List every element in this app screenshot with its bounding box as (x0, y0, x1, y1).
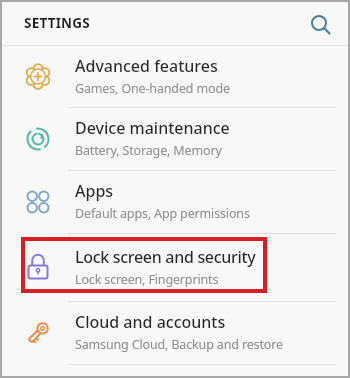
button[interactable]: Lock screen and security (0, 234, 350, 301)
staticText: Cloud and accounts (75, 311, 226, 333)
staticText: Device maintenance (75, 117, 230, 139)
staticText: Lock screen, Fingerprints (75, 271, 219, 288)
button[interactable] (306, 1, 350, 45)
staticText: Battery, Storage, Memory (75, 142, 222, 159)
button[interactable]: Advanced features (0, 46, 350, 107)
staticText: Games, One-handed mode (75, 80, 230, 97)
button[interactable]: SETTINGS (0, 0, 350, 45)
button[interactable]: Cloud and accounts (0, 302, 350, 364)
staticText: Default apps, App permissions (75, 205, 250, 222)
button[interactable]: Device maintenance (0, 108, 350, 170)
staticText: Advanced features (75, 55, 218, 77)
staticText: Apps (75, 180, 114, 202)
staticText: Samsung Cloud, Backup and restore (75, 336, 283, 353)
staticText: Lock screen and security (75, 246, 256, 268)
button[interactable]: Apps (0, 171, 350, 233)
staticText: SETTINGS (24, 14, 90, 32)
